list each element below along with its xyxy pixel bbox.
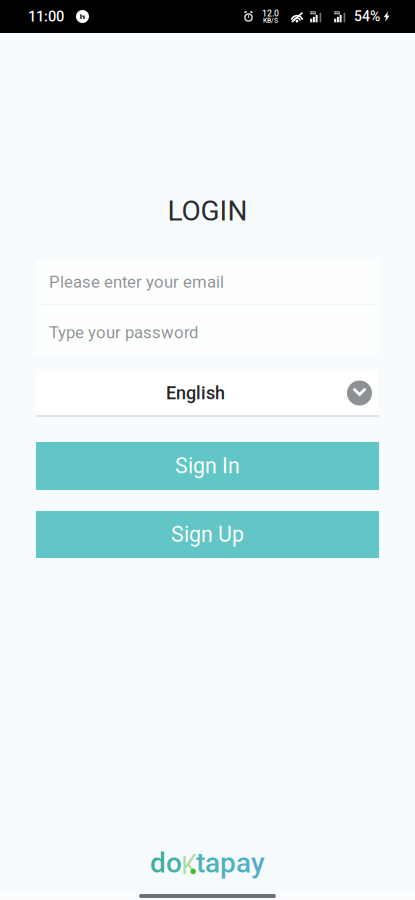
staticText: 12.0 [262,8,279,19]
button[interactable]: Please enter your email [36,260,379,304]
staticText: y [251,847,265,879]
button[interactable]: Sign Up [36,511,379,558]
staticText: Sign Up [171,522,244,547]
staticText: Please enter your email [49,272,224,292]
staticText: a [205,847,220,879]
staticText: English [166,382,225,404]
staticText: p [220,847,236,879]
staticText: t [196,847,205,879]
staticText: d [150,847,166,879]
button[interactable]: Sign In [36,442,379,490]
staticText: a [236,847,251,879]
staticText: Sign In [175,453,240,478]
staticText: KB/S [263,17,278,24]
button[interactable]: Type your password [36,305,379,355]
staticText: LOGIN [167,195,247,227]
staticText: Type your password [49,323,198,342]
staticText: 54% [354,8,380,25]
button[interactable]: English [36,369,379,417]
staticText: o [166,847,182,879]
staticText: 11:00 [28,8,64,25]
